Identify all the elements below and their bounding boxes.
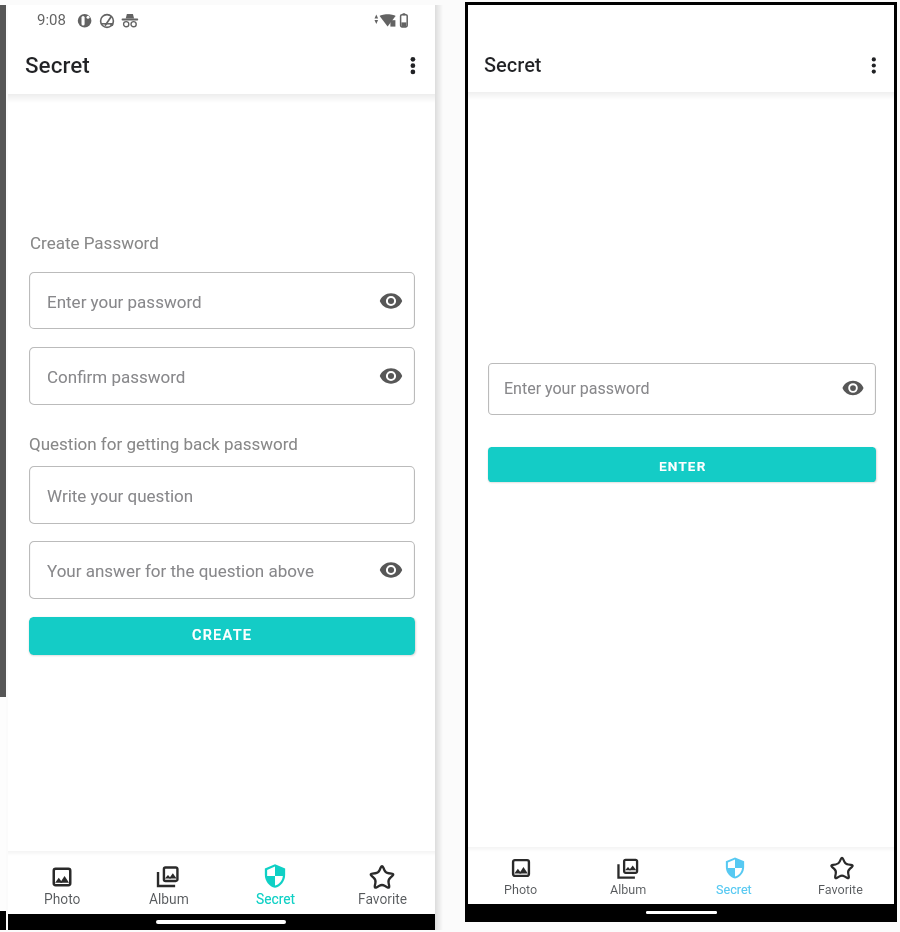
button[interactable]: Album [115,853,222,913]
button[interactable] [29,466,415,524]
staticText: Confirm password [47,367,186,387]
button[interactable]: Favorite [788,849,894,905]
button[interactable] [29,347,415,405]
button[interactable]: Photo [468,849,574,905]
staticText: Create Password [30,233,159,253]
staticText: CREATE [192,627,253,644]
button[interactable]: Show password [373,283,409,319]
staticText: Enter your password [504,379,650,398]
button[interactable]: Favorite [329,853,436,913]
staticText: Enter your password [47,292,202,312]
staticText: Secret [484,53,542,76]
button[interactable]: More options [858,46,890,86]
staticText: ENTER [659,458,707,474]
button[interactable]: Show password [835,370,871,406]
staticText: Album [149,891,189,907]
staticText: Secret [25,52,90,78]
button[interactable]: Album [575,849,681,905]
staticText: Your answer for the question above [47,561,314,581]
staticText: 9:08 [37,11,66,29]
staticText: Favorite [358,891,408,907]
button[interactable]: Show password [373,358,409,394]
button[interactable] [29,272,415,329]
button[interactable] [488,363,876,415]
staticText: Album [610,882,647,897]
button[interactable]: Secret [681,849,787,905]
button[interactable]: More options [397,45,429,87]
button[interactable]: Show password [373,552,409,588]
staticText: Secret [716,882,752,897]
button[interactable]: Photo [8,853,115,913]
button[interactable] [29,541,415,599]
button[interactable]: Secret [222,853,329,913]
staticText: Secret [256,891,296,907]
button[interactable] [29,617,415,655]
staticText: Question for getting back password [29,434,298,454]
staticText: Photo [44,891,81,907]
staticText: Photo [504,882,538,897]
staticText: Favorite [818,882,863,897]
staticText: Write your question [47,486,194,506]
button[interactable] [488,447,876,482]
